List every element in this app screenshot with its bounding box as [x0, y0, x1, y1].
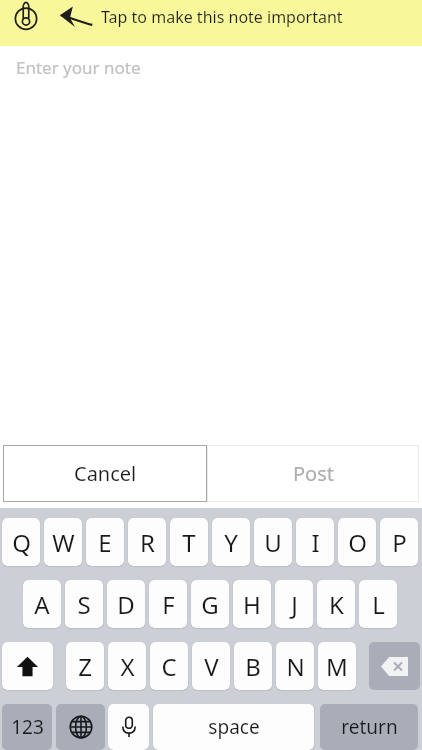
button[interactable]: C: [150, 642, 188, 690]
staticText: X: [120, 650, 135, 683]
staticText: Y: [224, 526, 238, 559]
button[interactable]: D: [107, 580, 145, 628]
staticText: return: [341, 714, 398, 740]
button[interactable]: X: [108, 642, 146, 690]
button[interactable]: Shift: [2, 642, 53, 690]
staticText: Z: [78, 650, 92, 683]
button[interactable]: E: [86, 518, 124, 566]
button[interactable]: Switch keyboard: [56, 704, 105, 750]
button[interactable]: Back: [52, 0, 98, 34]
staticText: O: [348, 526, 367, 559]
staticText: J: [291, 588, 298, 621]
staticText: L: [372, 588, 385, 621]
button[interactable]: space: [153, 704, 314, 750]
staticText: H: [243, 588, 261, 621]
button[interactable]: Q: [2, 518, 40, 566]
staticText: D: [117, 588, 135, 621]
staticText: G: [201, 588, 219, 621]
button[interactable]: J: [275, 580, 313, 628]
staticText: T: [182, 526, 196, 559]
button[interactable]: I: [296, 518, 334, 566]
staticText: C: [161, 650, 177, 683]
button[interactable]: S: [65, 580, 103, 628]
button[interactable]: O: [338, 518, 376, 566]
button[interactable]: Z: [66, 642, 104, 690]
button[interactable]: W: [44, 518, 82, 566]
staticText: R: [140, 526, 155, 559]
button[interactable]: F: [149, 580, 187, 628]
button[interactable]: U: [254, 518, 292, 566]
staticText: F: [162, 588, 175, 621]
button[interactable]: T: [170, 518, 208, 566]
staticText: space: [208, 714, 260, 740]
button[interactable]: P: [380, 518, 418, 566]
staticText: S: [77, 588, 91, 621]
button[interactable]: return: [320, 704, 418, 750]
staticText: U: [264, 526, 282, 559]
staticText: W: [52, 526, 75, 559]
button[interactable]: M: [318, 642, 356, 690]
staticText: A: [34, 588, 50, 621]
button[interactable]: R: [128, 518, 166, 566]
button[interactable]: L: [359, 580, 397, 628]
staticText: P: [392, 526, 407, 559]
staticText: K: [329, 588, 344, 621]
button[interactable]: Backspace: [369, 642, 420, 690]
staticText: M: [326, 650, 348, 683]
button[interactable]: N: [276, 642, 314, 690]
button[interactable]: Post: [207, 445, 419, 502]
staticText: Enter your note: [16, 56, 141, 79]
staticText: I: [311, 526, 320, 559]
staticText: B: [245, 650, 261, 683]
staticText: E: [98, 526, 112, 559]
button[interactable]: G: [191, 580, 229, 628]
button[interactable]: V: [192, 642, 230, 690]
button[interactable]: 123: [2, 704, 52, 750]
staticText: Q: [12, 526, 31, 559]
button[interactable]: Voice input: [108, 704, 149, 750]
staticText: Tap to make this note important: [101, 6, 343, 28]
button[interactable]: A: [23, 580, 61, 628]
button[interactable]: B: [234, 642, 272, 690]
button[interactable]: Cancel: [3, 445, 207, 502]
staticText: V: [204, 650, 219, 683]
staticText: 123: [11, 714, 44, 740]
button[interactable]: H: [233, 580, 271, 628]
staticText: Cancel: [74, 460, 137, 487]
button[interactable]: K: [317, 580, 355, 628]
button[interactable]: Mark note important: [9, 0, 43, 34]
staticText: Post: [293, 460, 334, 487]
button[interactable]: Y: [212, 518, 250, 566]
staticText: N: [286, 650, 305, 683]
